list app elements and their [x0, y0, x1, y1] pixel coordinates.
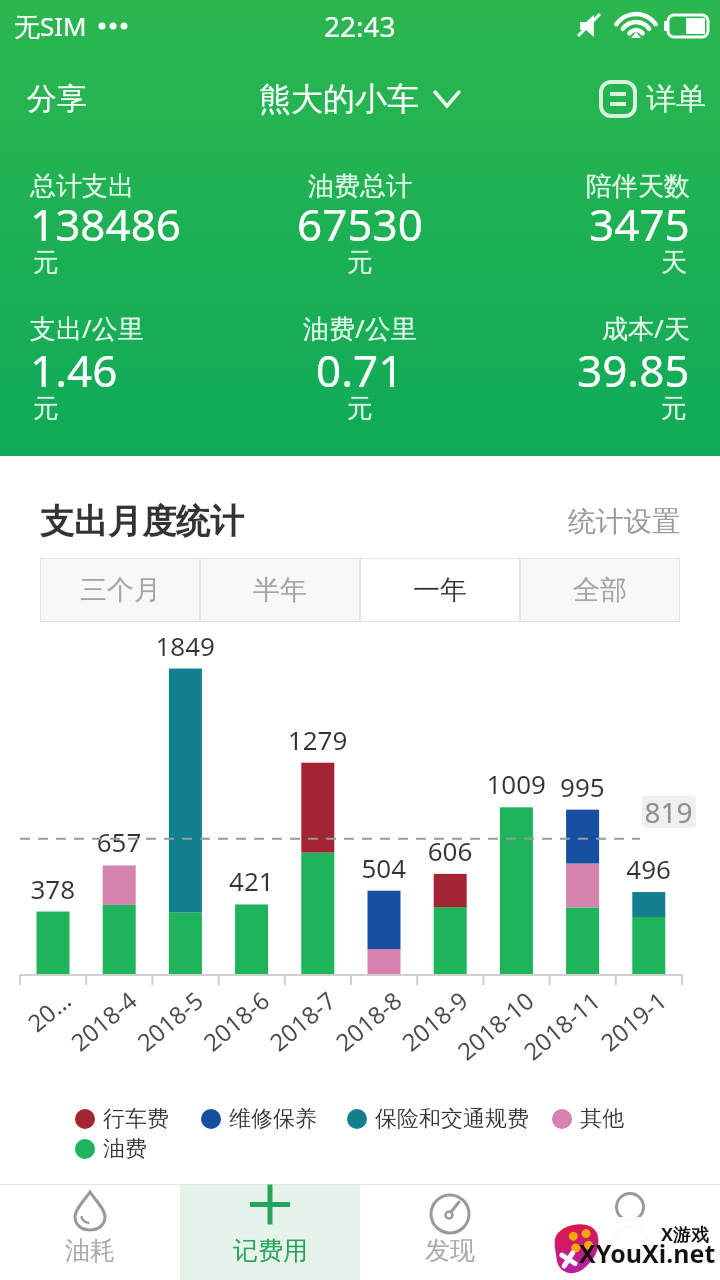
button[interactable] — [540, 1185, 720, 1280]
staticText: 行车费 — [103, 1105, 169, 1133]
staticText: 成本/天 — [602, 310, 690, 346]
staticText: 元 — [347, 392, 373, 425]
staticText: 其他 — [580, 1105, 624, 1133]
staticText: 陪伴天数 — [586, 170, 690, 203]
button[interactable]: 统计设置 — [568, 504, 680, 539]
staticText: 39.85 — [577, 340, 690, 400]
staticText: 天 — [661, 246, 687, 279]
staticText: 保险和交通规费 — [375, 1105, 529, 1133]
staticText: 维修保养 — [229, 1105, 317, 1133]
staticText: 1.46 — [30, 340, 118, 400]
staticText: 油耗 — [65, 1235, 115, 1266]
staticText: XYouXi.net — [579, 1236, 716, 1270]
staticText: X游戏 — [661, 1222, 710, 1247]
staticText: 油费/公里 — [303, 310, 417, 346]
staticText: 半年 — [253, 573, 307, 607]
staticText: 总计支出 — [30, 170, 134, 203]
staticText: 22:43 — [324, 7, 396, 45]
staticText: 统计设置 — [568, 504, 680, 539]
staticText: 3475 — [589, 194, 690, 254]
staticText: 记费用 — [233, 1235, 308, 1266]
button[interactable]: 油耗 — [0, 1185, 180, 1280]
staticText: 三个月 — [80, 573, 161, 607]
staticText: 元 — [661, 392, 687, 425]
button[interactable]: 三个月 — [40, 558, 200, 622]
button[interactable]: 全部 — [520, 558, 680, 622]
staticText: 一年 — [413, 573, 467, 607]
staticText: 详单 — [646, 80, 706, 118]
button[interactable]: 记费用 — [180, 1185, 360, 1280]
button[interactable]: 详单 — [594, 74, 712, 124]
staticText: 支出月度统计 — [40, 500, 244, 543]
staticText: 分享 — [27, 80, 87, 118]
staticText: 无SIM — [14, 8, 87, 44]
staticText: 支出/公里 — [30, 310, 144, 346]
staticText: 元 — [33, 392, 59, 425]
staticText: 67530 — [297, 194, 423, 254]
button[interactable]: 熊大的小车 — [251, 71, 469, 127]
staticText: 熊大的小车 — [259, 79, 419, 119]
staticText: 油费总计 — [308, 170, 412, 203]
button[interactable]: 发现 — [360, 1185, 540, 1280]
button[interactable]: 半年 — [200, 558, 360, 622]
staticText: 元 — [33, 246, 59, 279]
staticText: 油费 — [103, 1135, 147, 1163]
staticText: 全部 — [573, 573, 627, 607]
button[interactable]: 分享 — [14, 72, 100, 126]
staticText: 元 — [347, 246, 373, 279]
button[interactable]: 一年 — [360, 558, 520, 622]
staticText: 发现 — [425, 1235, 475, 1266]
staticText: 138486 — [30, 194, 182, 254]
staticText: 0.71 — [316, 340, 404, 400]
